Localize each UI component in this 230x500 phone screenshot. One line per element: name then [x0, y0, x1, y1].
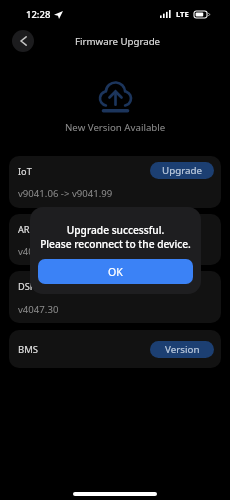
staticText: DSP — [18, 280, 36, 293]
staticText: Upgrade successful. Please reconnect to … — [40, 223, 191, 251]
button[interactable]: ARM — [9, 214, 221, 265]
staticText: New Version Available — [65, 121, 166, 134]
button[interactable]: Upgrade — [150, 162, 214, 179]
button[interactable]: IoT — [9, 156, 221, 208]
staticText: v4047.30 — [18, 303, 59, 316]
button[interactable]: BMS — [9, 330, 221, 368]
button[interactable]: Back — [12, 30, 34, 52]
staticText: v4001.12 — [18, 245, 59, 258]
button[interactable]: OK — [38, 259, 193, 284]
staticText: 12:28 — [26, 8, 51, 21]
staticText: LTE — [176, 9, 189, 19]
staticText: v9041.06 -> v9041.99 — [18, 187, 113, 200]
staticText: IoT — [18, 165, 32, 178]
button[interactable]: DSP — [9, 271, 221, 323]
staticText: Firmware Upgrade — [75, 35, 161, 48]
staticText: ARM — [18, 223, 38, 236]
staticText: Upgrade — [162, 164, 203, 177]
staticText: Version — [165, 343, 200, 356]
button[interactable]: Version — [150, 341, 214, 358]
staticText: BMS — [18, 343, 39, 356]
staticText: OK — [108, 265, 123, 279]
